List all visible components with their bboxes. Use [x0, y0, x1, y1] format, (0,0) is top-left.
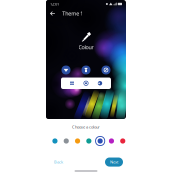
staticText: Colour — [78, 44, 93, 51]
button[interactable] — [72, 135, 83, 146]
staticText: Choose a colour — [72, 124, 100, 130]
staticText: Next — [110, 159, 118, 165]
staticText: Back — [54, 159, 63, 165]
button[interactable]: Colour — [76, 30, 95, 53]
button[interactable] — [117, 135, 128, 146]
button[interactable] — [61, 135, 72, 146]
button[interactable]: Back — [49, 157, 68, 167]
button[interactable] — [106, 135, 117, 146]
button[interactable] — [94, 135, 106, 146]
button[interactable]: Back — [48, 9, 57, 17]
staticText: 12:01 — [50, 1, 59, 7]
button[interactable] — [49, 135, 61, 146]
button[interactable]: Next — [105, 157, 123, 167]
button[interactable] — [83, 135, 94, 146]
staticText: Theme 1 — [62, 10, 83, 17]
